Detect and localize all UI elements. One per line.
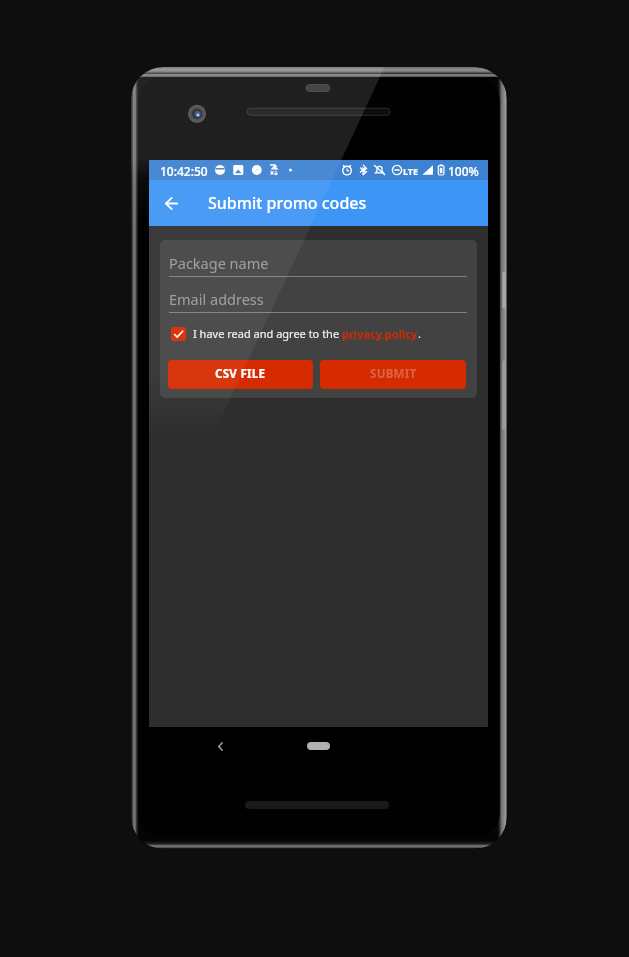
button[interactable]: SUBMIT (320, 360, 466, 389)
staticText: privacy policy (342, 326, 418, 341)
button[interactable]: Home (307, 742, 330, 750)
staticText: Package name (169, 253, 269, 273)
staticText: . (418, 326, 421, 341)
staticText: I have read and agree to the (193, 326, 342, 341)
button[interactable]: I have read and agree to the (171, 326, 421, 341)
staticText: CSV FILE (215, 366, 266, 382)
button[interactable]: Package name (169, 252, 467, 277)
button[interactable]: Email address (169, 288, 467, 313)
button[interactable]: Back (207, 733, 233, 759)
button[interactable]: Navigate up (149, 180, 193, 226)
staticText: LTE (403, 165, 419, 177)
staticText: Submit promo codes (208, 192, 367, 214)
staticText: 100% (448, 163, 479, 179)
staticText: SUBMIT (370, 366, 417, 382)
staticText: 10:42:50 (160, 163, 208, 179)
button[interactable]: CSV FILE (168, 360, 313, 389)
staticText: Email address (169, 289, 264, 309)
